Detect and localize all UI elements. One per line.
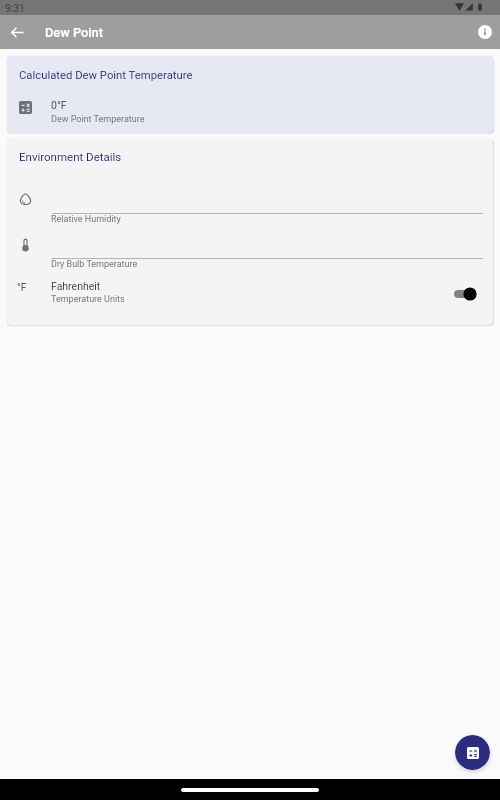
button[interactable]: Back [5, 20, 29, 44]
button[interactable]: °F [7, 274, 493, 314]
staticText: Calculated Dew Point Temperature [19, 69, 193, 82]
staticText: °F [17, 282, 27, 294]
staticText: Dew Point Temperature [51, 114, 145, 125]
button[interactable]: Fahrenheit toggle [450, 284, 480, 304]
button[interactable]: Calculated Dew Point Temperature [7, 56, 493, 133]
staticText: Temperature Units [51, 294, 125, 305]
button[interactable]: Calculate dew point [455, 735, 490, 770]
staticText: 9:31 [5, 2, 25, 14]
staticText: Dew Point [45, 25, 103, 40]
staticText: Dry Bulb Temperature [51, 259, 138, 270]
staticText: Fahrenheit [51, 280, 101, 292]
staticText: Relative Humidity [51, 214, 121, 225]
button[interactable]: Info [472, 19, 498, 45]
staticText: 0°F [51, 99, 67, 111]
staticText: Environment Details [19, 150, 122, 163]
